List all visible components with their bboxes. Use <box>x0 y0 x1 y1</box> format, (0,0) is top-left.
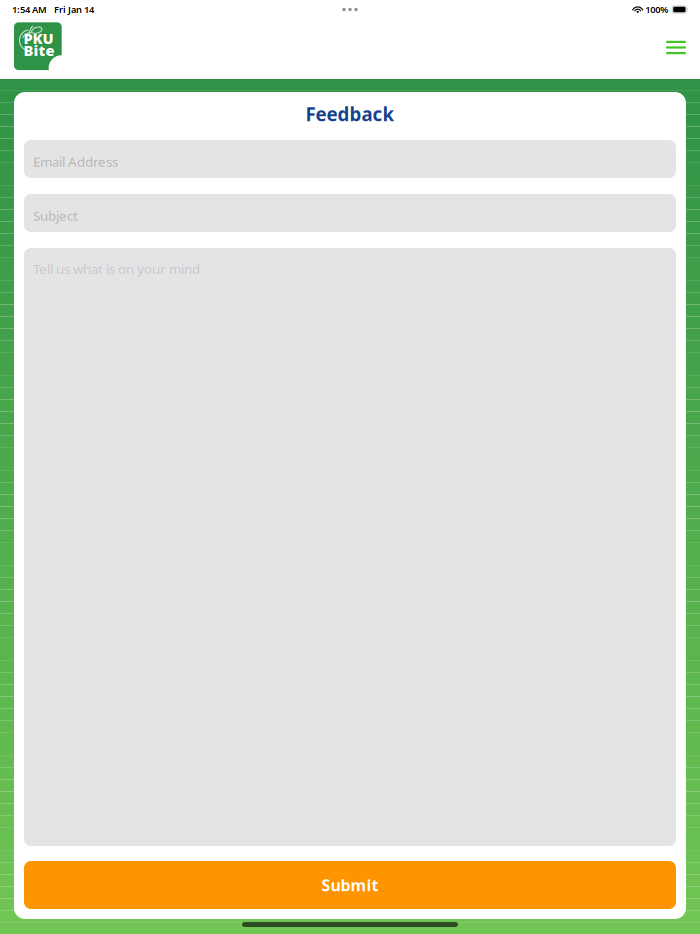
staticText: Subject <box>33 207 78 224</box>
button[interactable]: Menu <box>654 25 698 69</box>
button[interactable]: Email Address <box>24 140 676 178</box>
button[interactable]: Submit <box>24 861 676 909</box>
staticText: Feedback <box>305 102 394 126</box>
staticText: Submit <box>321 874 378 896</box>
staticText: PKU <box>23 29 53 48</box>
staticText: Fri Jan 14 <box>54 3 94 16</box>
staticText: Tell us what is on your mind <box>33 260 200 278</box>
staticText: Bite <box>23 41 54 60</box>
staticText: 100% <box>645 3 668 16</box>
staticText: 1:54 AM <box>12 3 47 16</box>
staticText: Email Address <box>33 153 118 170</box>
